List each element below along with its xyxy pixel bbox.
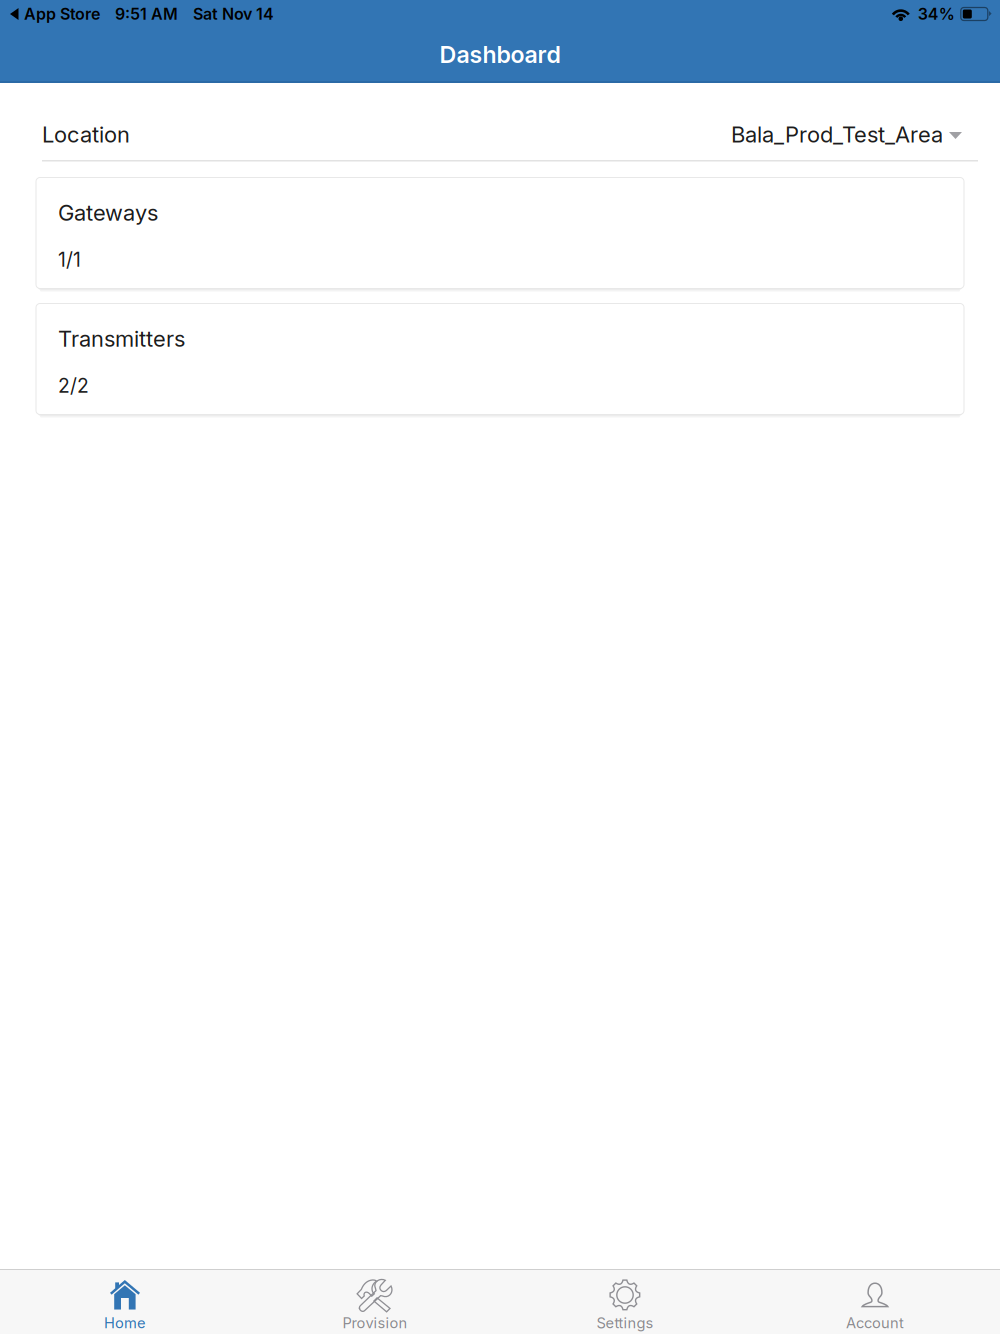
staticText: 1/1 [58, 248, 81, 271]
staticText: Gateways [58, 199, 158, 226]
staticText: Sat Nov 14 [193, 4, 274, 24]
staticText: Transmitters [58, 325, 185, 352]
staticText: 9:51 AM [115, 4, 178, 24]
staticText: 34% [918, 4, 955, 24]
button[interactable]: Settings [500, 1269, 750, 1334]
staticText: Location [42, 121, 130, 148]
staticText: Settings [596, 1314, 653, 1332]
staticText: Provision [342, 1314, 407, 1332]
button[interactable]: Home [0, 1269, 250, 1334]
button[interactable]: Transmitters [36, 303, 964, 414]
staticText: 2/2 [58, 374, 89, 397]
staticText: Home [104, 1314, 146, 1332]
staticText: App Store [24, 4, 100, 24]
button[interactable]: Provision [250, 1269, 500, 1334]
button[interactable]: Location [0, 109, 1000, 160]
staticText: Account [846, 1314, 904, 1332]
staticText: Dashboard [439, 40, 560, 69]
staticText: Bala_Prod_Test_Area [731, 121, 943, 148]
button[interactable]: Gateways [36, 177, 964, 288]
button[interactable]: Account [750, 1269, 1000, 1334]
